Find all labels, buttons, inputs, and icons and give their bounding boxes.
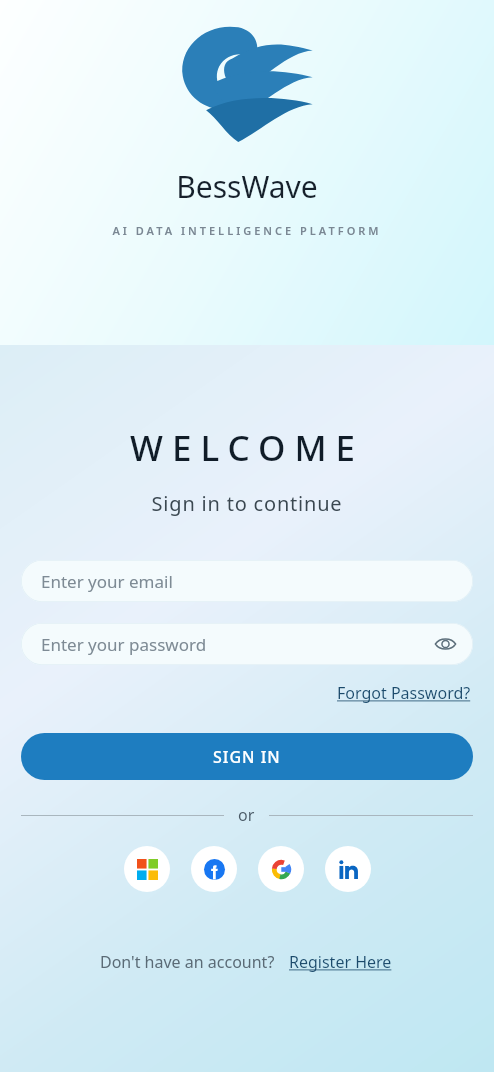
button[interactable]: Sign in with Microsoft (124, 846, 170, 892)
button[interactable]: Show password (431, 630, 459, 658)
staticText: BessWave (176, 166, 318, 207)
staticText: AI DATA INTELLIGENCE PLATFORM (112, 223, 382, 238)
button[interactable]: Register Here (287, 947, 394, 977)
staticText: Don't have an account? (100, 951, 275, 973)
button[interactable]: Enter your password (21, 623, 473, 665)
staticText: Register Here (289, 951, 392, 973)
button[interactable]: Forgot Password? (335, 678, 473, 708)
button[interactable]: Sign in with LinkedIn (325, 846, 371, 892)
staticText: Enter your email (41, 570, 173, 593)
button[interactable]: Sign in with Facebook (191, 846, 237, 892)
button[interactable]: Enter your email (21, 560, 473, 602)
button[interactable]: Sign in with Google (258, 846, 304, 892)
staticText: SIGN IN (213, 746, 281, 768)
staticText: WELCOME (0, 424, 494, 472)
button[interactable]: SIGN IN (21, 733, 473, 780)
staticText: or (238, 804, 255, 826)
staticText: Sign in to continue (0, 490, 494, 517)
staticText: Forgot Password? (337, 682, 471, 704)
staticText: Enter your password (41, 633, 207, 656)
